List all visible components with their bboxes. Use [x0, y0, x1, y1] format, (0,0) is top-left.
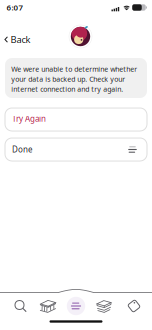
button[interactable]: Shelf: [95, 299, 113, 313]
button[interactable]: Libby menu: [69, 25, 92, 48]
button[interactable]: Menu: [66, 296, 85, 315]
staticText: internet connection and try again.: [11, 84, 123, 94]
staticText: 6:07: [6, 2, 23, 13]
staticText: We were unable to determine whether: [11, 64, 137, 74]
staticText: Try Again: [12, 113, 46, 124]
button[interactable]: Search: [14, 299, 27, 312]
button[interactable]: Back: [1, 32, 33, 46]
button[interactable]: Library: [39, 299, 57, 313]
button[interactable]: Done: [5, 138, 147, 161]
button[interactable]: Try Again: [5, 108, 147, 131]
staticText: your data is backed up. Check your: [11, 74, 125, 84]
button[interactable]: Tags: [126, 298, 141, 313]
staticText: Done: [12, 144, 33, 155]
staticText: Back: [10, 33, 30, 46]
